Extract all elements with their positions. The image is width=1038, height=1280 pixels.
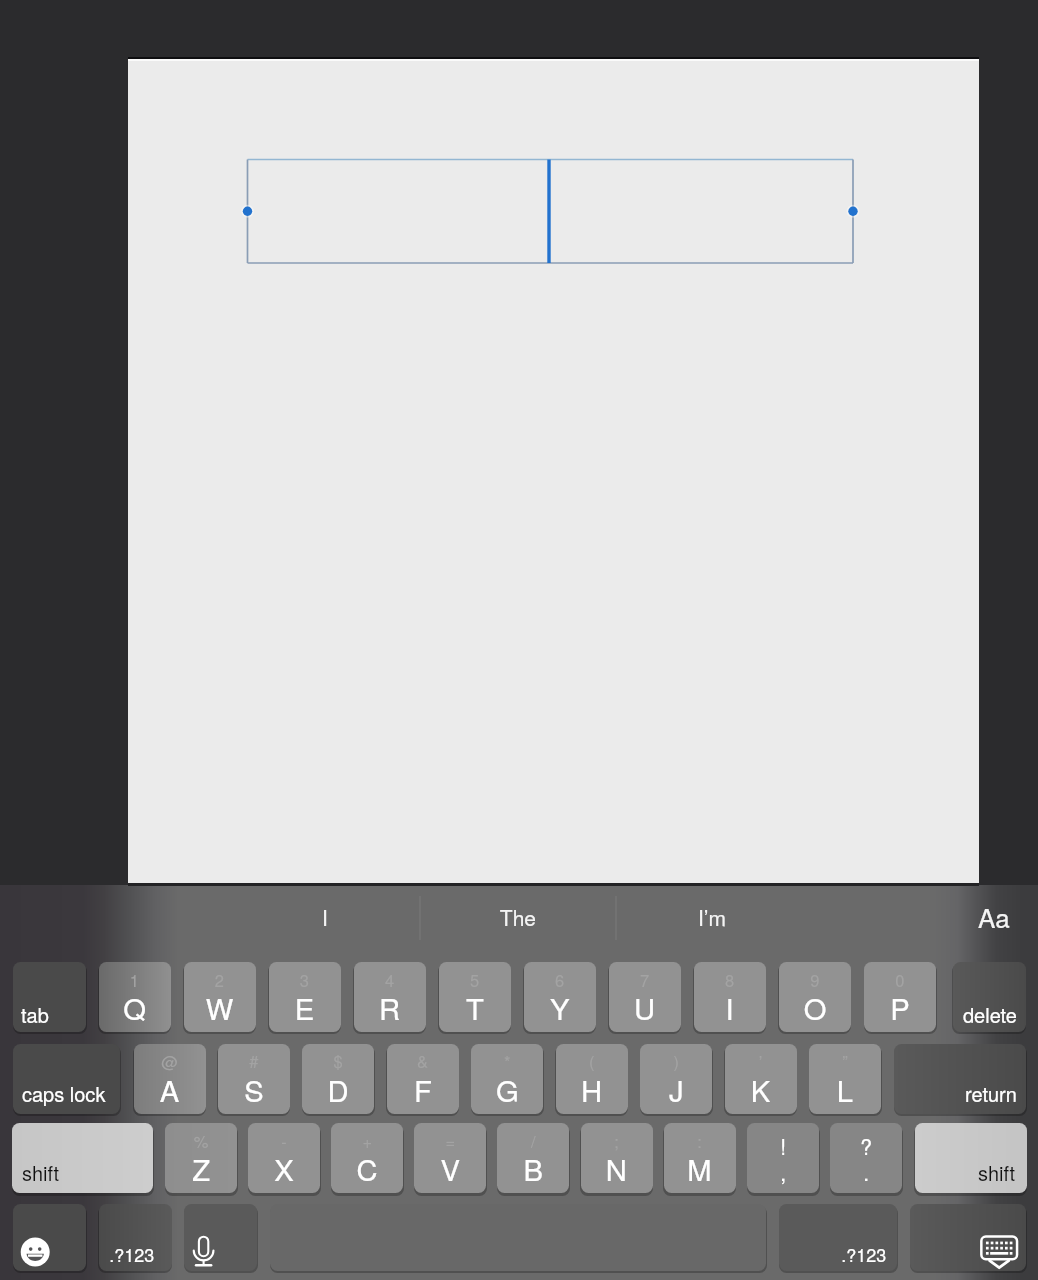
button[interactable] [421, 890, 615, 942]
button[interactable] [725, 1044, 797, 1114]
button[interactable]: Text formatting [952, 890, 1036, 942]
button[interactable] [864, 962, 936, 1032]
button[interactable] [354, 962, 426, 1032]
button[interactable]: Delete [953, 962, 1026, 1032]
button[interactable] [809, 1044, 881, 1114]
button[interactable]: Numbers and symbols [99, 1204, 172, 1271]
button[interactable]: Exclamation mark and comma [747, 1123, 819, 1193]
button[interactable] [228, 890, 422, 942]
button[interactable] [331, 1123, 403, 1193]
button[interactable] [664, 1123, 736, 1193]
button[interactable] [615, 890, 809, 942]
button[interactable] [387, 1044, 459, 1114]
button[interactable] [184, 962, 256, 1032]
button[interactable]: Numbers and symbols [779, 1204, 897, 1271]
button[interactable]: Question mark and period [830, 1123, 902, 1193]
button[interactable] [218, 1044, 290, 1114]
button[interactable] [694, 962, 766, 1032]
button[interactable] [524, 962, 596, 1032]
button[interactable]: Hide keyboard [910, 1204, 1026, 1271]
button[interactable]: Emoji [13, 1204, 86, 1271]
button[interactable] [99, 962, 171, 1032]
button[interactable]: Dictation [184, 1204, 257, 1271]
button[interactable]: Tab [13, 962, 86, 1032]
button[interactable] [609, 962, 681, 1032]
button[interactable] [414, 1123, 486, 1193]
button[interactable] [134, 1044, 206, 1114]
button[interactable] [471, 1044, 543, 1114]
button[interactable] [640, 1044, 712, 1114]
button[interactable]: Shift [12, 1123, 153, 1193]
button[interactable] [497, 1123, 569, 1193]
button[interactable]: Shift [915, 1123, 1027, 1193]
button[interactable] [165, 1123, 237, 1193]
button[interactable]: Caps lock [13, 1044, 120, 1114]
button[interactable] [269, 962, 341, 1032]
button[interactable]: Return [894, 1044, 1026, 1114]
button[interactable] [248, 1123, 320, 1193]
button[interactable] [779, 962, 851, 1032]
button[interactable] [581, 1123, 653, 1193]
button[interactable] [556, 1044, 628, 1114]
button[interactable] [439, 962, 511, 1032]
button[interactable] [302, 1044, 374, 1114]
